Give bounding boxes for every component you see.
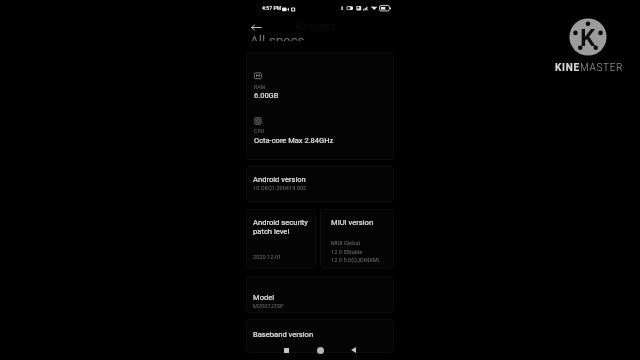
staticText: Octa-core Max 2.84GHz: [254, 136, 334, 145]
staticText: M2007J3SP: [253, 303, 284, 310]
button[interactable]: Android version: [246, 166, 394, 202]
staticText: 4:57 PM: [262, 5, 282, 11]
button[interactable]: Model: [246, 276, 394, 313]
button[interactable]: Android security patch level: [246, 209, 316, 269]
staticText: MIUI version: [331, 218, 374, 227]
staticText: MIUI Global 12.0.5Stable 12.0.5.0(QJDINX…: [331, 240, 380, 263]
button[interactable]: Back: [346, 343, 360, 357]
staticText: KINE: [555, 62, 580, 74]
staticText: RAM: [254, 84, 266, 90]
staticText: 6.00GB: [254, 91, 279, 100]
button[interactable]: MIUI version: [320, 209, 394, 269]
staticText: Android security patch level: [253, 218, 308, 236]
button[interactable]: Recents: [279, 343, 293, 357]
staticText: MASTER: [580, 62, 624, 74]
staticText: Baseband version: [253, 330, 314, 339]
staticText: 2020-12-01: [253, 254, 282, 261]
button[interactable]: Home: [313, 343, 327, 357]
staticText: CPU: [254, 128, 265, 134]
staticText: 10 QKQ1.200419.002: [253, 185, 307, 192]
staticText: K: [580, 24, 596, 52]
staticText: Android version: [253, 175, 306, 184]
button[interactable]: Baseband version: [246, 319, 394, 353]
staticText: All specs: [295, 21, 336, 33]
staticText: All specs: [250, 32, 305, 41]
button[interactable]: Navigate up: [249, 20, 263, 34]
staticText: Model: [253, 293, 275, 302]
button[interactable]: RAM: [246, 52, 394, 160]
